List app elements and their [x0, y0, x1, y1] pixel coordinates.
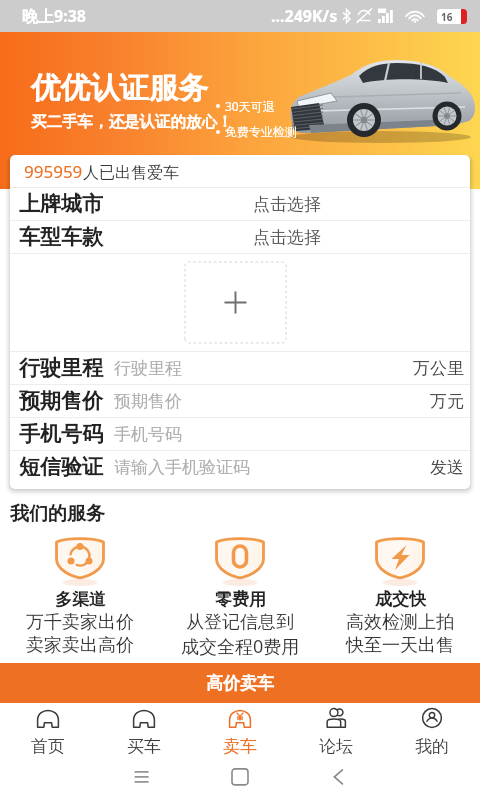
staticText: 免费专业检测 — [225, 124, 297, 139]
button[interactable]: 首页 — [0, 703, 96, 758]
button[interactable]: 卖车 — [192, 703, 288, 758]
button[interactable]: 成交快 — [320, 535, 480, 657]
staticText: 成交全程0费用 — [181, 634, 300, 659]
staticText: 车型车款 — [19, 224, 103, 250]
staticText: 首页 — [31, 736, 65, 757]
staticText: 人已出售爱车 — [83, 163, 179, 183]
staticText: 卖车 — [223, 736, 257, 757]
button[interactable]: 车型车款 — [10, 221, 470, 253]
staticText: 上牌城市 — [19, 191, 103, 217]
staticText: 论坛 — [319, 736, 353, 757]
staticText: 点击选择 — [253, 194, 321, 215]
staticText: 买车 — [127, 736, 161, 757]
staticText: 多渠道 — [55, 589, 106, 610]
staticText: 手机号码 — [19, 421, 103, 447]
button[interactable]: 预期售价 — [10, 385, 470, 417]
staticText: 快至一天出售 — [346, 634, 454, 657]
staticText: 万千卖家出价 — [26, 611, 134, 634]
staticText: 卖家卖出高价 — [26, 634, 134, 657]
button[interactable]: 手机号码 — [10, 418, 470, 450]
staticText: 我的 — [415, 736, 449, 757]
staticText: 晚上9:38 — [22, 5, 86, 27]
staticText: 短信验证 — [19, 454, 103, 480]
staticText: ...249K/s — [271, 5, 338, 27]
button[interactable]: 上牌城市 — [10, 188, 470, 220]
staticText: 请输入手机验证码 — [114, 457, 250, 478]
staticText: 预期售价 — [19, 388, 103, 414]
staticText: 我们的服务 — [10, 502, 105, 526]
staticText: 16 — [441, 10, 453, 24]
staticText: 行驶里程 — [19, 355, 103, 381]
button[interactable]: 行驶里程 — [10, 352, 470, 384]
staticText: 成交快 — [375, 589, 426, 610]
staticText: 发送 — [430, 457, 464, 478]
staticText: 买二手车，还是认证的放心！ — [31, 112, 233, 132]
staticText: 零费用 — [215, 589, 266, 610]
staticText: 点击选择 — [253, 227, 321, 248]
button[interactable]: 高价卖车 — [0, 663, 480, 703]
staticText: 万元 — [430, 391, 464, 412]
button[interactable]: 买车 — [96, 703, 192, 758]
staticText: 30天可退 — [225, 98, 275, 114]
button[interactable]: 多渠道 — [0, 535, 160, 657]
staticText: 高价卖车 — [206, 673, 274, 694]
button[interactable]: 论坛 — [288, 703, 384, 758]
staticText: 优优认证服务 — [31, 70, 208, 107]
staticText: 手机号码 — [114, 424, 182, 445]
staticText: 高效检测上拍 — [346, 611, 454, 634]
staticText: 从登记信息到 — [186, 611, 294, 634]
button[interactable]: 短信验证 — [10, 451, 470, 483]
staticText: 预期售价 — [114, 391, 182, 412]
button[interactable]: 零费用 — [160, 535, 320, 659]
button[interactable]: 我的 — [384, 703, 480, 758]
staticText: 995959 — [24, 160, 83, 183]
button[interactable]: 添加照片 — [185, 262, 286, 343]
staticText: 行驶里程 — [114, 358, 182, 379]
staticText: 万公里 — [413, 358, 464, 379]
